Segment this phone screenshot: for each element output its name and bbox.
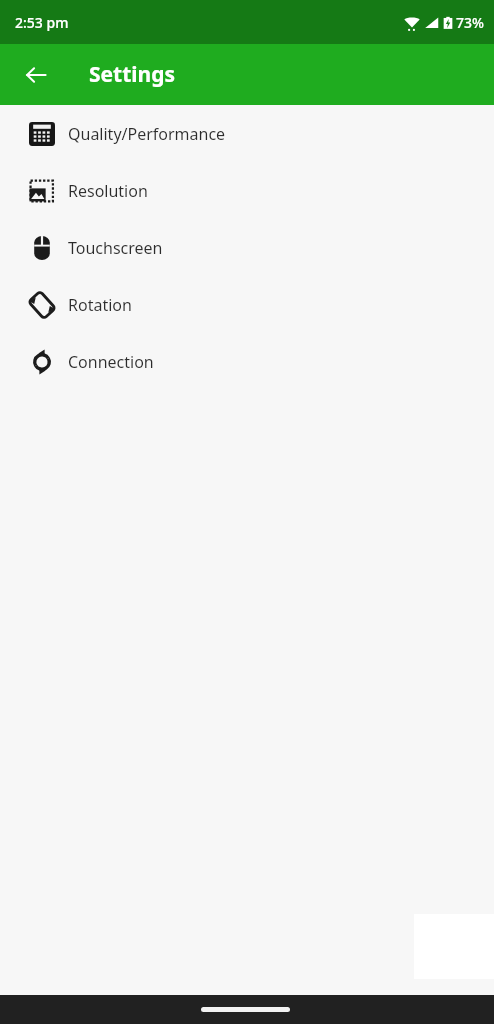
staticText: Quality/Performance bbox=[68, 123, 226, 145]
button[interactable]: Resolution bbox=[0, 162, 494, 219]
button[interactable]: Rotation bbox=[0, 276, 494, 333]
staticText: Settings bbox=[89, 60, 176, 89]
staticText: Rotation bbox=[68, 294, 132, 316]
staticText: 2:53 pm bbox=[15, 13, 69, 32]
button[interactable]: Back bbox=[12, 51, 60, 99]
staticText: Touchscreen bbox=[68, 237, 163, 259]
button[interactable]: Connection bbox=[0, 333, 494, 390]
staticText: 73% bbox=[456, 13, 484, 32]
button[interactable]: Touchscreen bbox=[0, 219, 494, 276]
staticText: Connection bbox=[68, 351, 154, 373]
button[interactable]: Quality/Performance bbox=[0, 105, 494, 162]
staticText: Resolution bbox=[68, 180, 148, 202]
